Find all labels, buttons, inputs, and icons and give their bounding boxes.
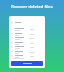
button[interactable]: File	[11, 36, 43, 40]
button[interactable]: File	[11, 50, 43, 54]
button[interactable]	[11, 61, 43, 66]
button[interactable]: File	[11, 45, 43, 49]
button[interactable]: File	[11, 41, 43, 45]
staticText: Recover deleted files	[0, 4, 64, 10]
button[interactable]: File	[11, 54, 43, 58]
button[interactable]: File	[11, 21, 43, 24]
button[interactable]: File	[11, 32, 43, 36]
button[interactable]: File	[11, 27, 43, 31]
